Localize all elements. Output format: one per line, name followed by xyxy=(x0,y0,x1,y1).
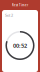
staticText: Rest Timer xyxy=(12,3,28,7)
staticText: Set 2 xyxy=(5,13,13,18)
staticText: 00:52 xyxy=(13,42,27,49)
